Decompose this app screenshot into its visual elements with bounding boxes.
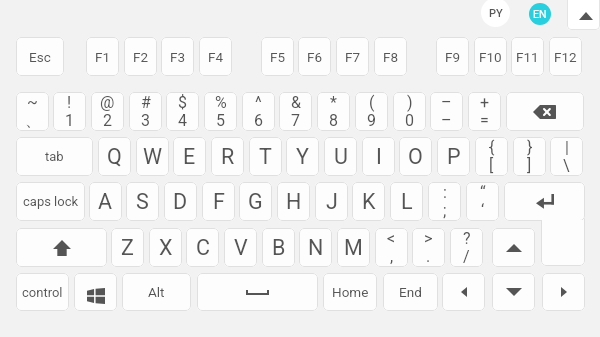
staticText: F5 xyxy=(270,49,286,65)
button[interactable]: P xyxy=(437,137,470,176)
button[interactable]: ! 1 xyxy=(53,92,86,131)
staticText: C xyxy=(196,235,210,260)
button[interactable]: L xyxy=(390,182,423,221)
button[interactable]: F11 xyxy=(511,37,544,76)
button[interactable]: { [ xyxy=(475,137,508,176)
button[interactable]: # 3 xyxy=(129,92,162,131)
button[interactable]: N xyxy=(299,228,332,267)
staticText: F xyxy=(213,189,225,214)
button[interactable]: Left xyxy=(442,273,485,311)
button[interactable]: & 7 xyxy=(279,92,312,131)
button[interactable]: End xyxy=(383,273,438,311)
button[interactable]: F5 xyxy=(261,37,294,76)
button[interactable]: – – xyxy=(430,92,463,131)
button[interactable]: + = xyxy=(468,92,501,131)
button[interactable]: Q xyxy=(98,137,131,176)
button[interactable]: F9 xyxy=(436,37,469,76)
button[interactable]: E xyxy=(173,137,206,176)
button[interactable]: F10 xyxy=(474,37,507,76)
button[interactable]: J xyxy=(315,182,348,221)
button[interactable]: Esc xyxy=(16,37,64,76)
button[interactable]: Space xyxy=(197,273,318,311)
button[interactable]: S xyxy=(126,182,159,221)
button[interactable]: K xyxy=(352,182,385,221)
staticText: 3 xyxy=(141,111,150,130)
button[interactable]: F6 xyxy=(298,37,331,76)
button[interactable]: F4 xyxy=(199,37,232,76)
staticText: caps lock xyxy=(23,194,79,209)
staticText: “ xyxy=(480,183,486,202)
button[interactable]: Pinyin layout xyxy=(481,0,510,27)
staticText: 2 xyxy=(103,111,112,130)
button[interactable]: * 8 xyxy=(317,92,350,131)
button[interactable]: O xyxy=(399,137,432,176)
button[interactable]: R xyxy=(211,137,244,176)
button[interactable]: : ; xyxy=(428,182,461,221)
staticText: 8 xyxy=(329,111,338,130)
button[interactable]: ^ 6 xyxy=(242,92,275,131)
button[interactable]: Home xyxy=(323,273,377,311)
staticText: End xyxy=(399,284,422,300)
button[interactable]: ( 9 xyxy=(355,92,388,131)
button[interactable]: F7 xyxy=(336,37,369,76)
button[interactable]: English layout xyxy=(529,3,551,25)
button[interactable]: I xyxy=(362,137,395,176)
staticText: F9 xyxy=(445,49,461,65)
button[interactable]: G xyxy=(239,182,272,221)
button[interactable]: $ 4 xyxy=(166,92,199,131)
button[interactable]: M xyxy=(337,228,370,267)
button[interactable]: @ 2 xyxy=(91,92,124,131)
button[interactable]: F2 xyxy=(124,37,157,76)
staticText: + xyxy=(480,93,490,112)
button[interactable]: F1 xyxy=(86,37,119,76)
button[interactable]: Shift xyxy=(16,228,107,267)
button[interactable]: A xyxy=(89,182,122,221)
button[interactable]: H xyxy=(277,182,310,221)
button[interactable]: ) 0 xyxy=(393,92,426,131)
button[interactable]: D xyxy=(164,182,197,221)
button[interactable]: Expand keyboard xyxy=(567,0,600,30)
button[interactable]: % 5 xyxy=(204,92,237,131)
staticText: control xyxy=(22,285,63,300)
button[interactable]: U xyxy=(324,137,357,176)
button[interactable]: ~ 、 xyxy=(16,92,49,131)
button[interactable]: F3 xyxy=(161,37,194,76)
button[interactable]: > . xyxy=(412,228,445,267)
button[interactable]: B xyxy=(262,228,295,267)
staticText: Y xyxy=(296,144,309,169)
staticText: E xyxy=(183,144,196,169)
button[interactable]: F12 xyxy=(549,37,582,76)
button[interactable]: tab xyxy=(16,137,93,176)
button[interactable]: Enter xyxy=(504,182,585,266)
button[interactable]: Alt xyxy=(122,273,191,311)
staticText: Alt xyxy=(148,284,165,300)
button[interactable]: control xyxy=(16,273,69,311)
button[interactable]: Up xyxy=(492,228,535,267)
button[interactable]: caps lock xyxy=(16,182,85,221)
button[interactable]: X xyxy=(149,228,182,267)
button[interactable]: Z xyxy=(111,228,144,267)
button[interactable]: Right xyxy=(542,273,585,311)
staticText: T xyxy=(259,144,272,169)
button[interactable]: Windows xyxy=(74,273,117,311)
button[interactable]: Down xyxy=(492,273,535,311)
staticText: M xyxy=(344,235,363,260)
button[interactable]: T xyxy=(249,137,282,176)
button[interactable]: W xyxy=(136,137,169,176)
button[interactable]: Backspace xyxy=(506,92,584,131)
staticText: ) xyxy=(407,93,413,112)
button[interactable]: | \ xyxy=(550,137,583,176)
button[interactable]: } ] xyxy=(513,137,546,176)
button[interactable]: V xyxy=(224,228,257,267)
staticText: F8 xyxy=(383,49,399,65)
button[interactable]: ? / xyxy=(450,228,483,267)
button[interactable]: Y xyxy=(286,137,319,176)
staticText: F2 xyxy=(133,49,149,65)
staticText: 6 xyxy=(254,111,263,130)
button[interactable]: F8 xyxy=(374,37,407,76)
button[interactable]: “ ‘ xyxy=(466,182,499,221)
button[interactable]: C xyxy=(186,228,219,267)
button[interactable]: < , xyxy=(375,228,408,267)
staticText: O xyxy=(408,144,423,169)
button[interactable]: F xyxy=(202,182,235,221)
